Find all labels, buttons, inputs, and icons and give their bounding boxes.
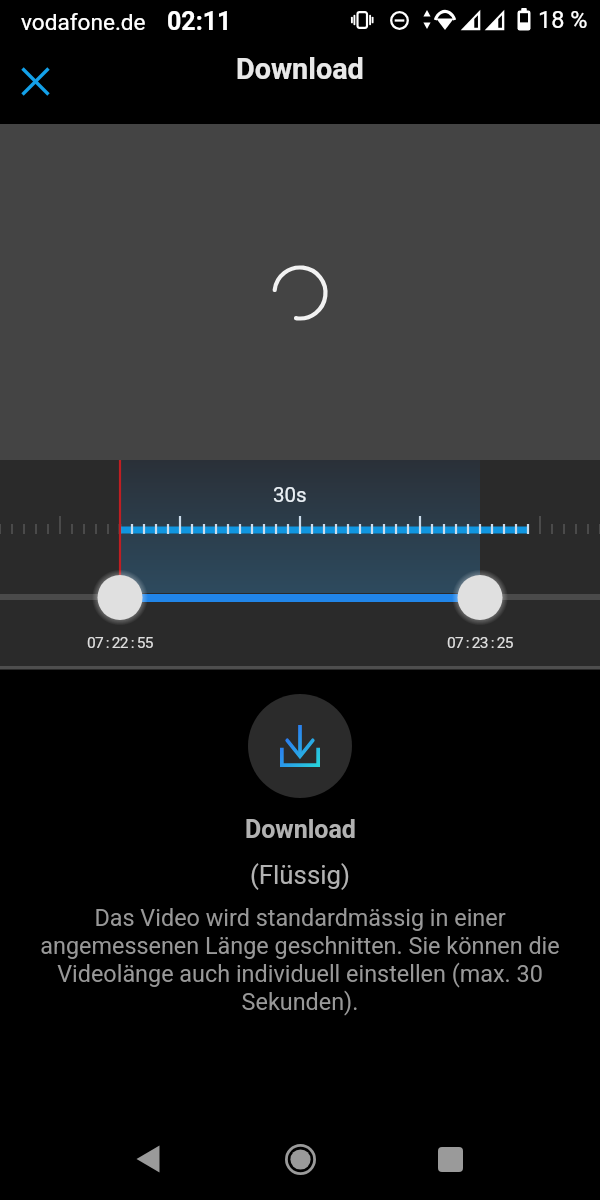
staticText: Download: [245, 815, 356, 844]
button[interactable]: Download: [248, 694, 352, 798]
staticText: 02:11: [167, 7, 232, 36]
staticText: 07 : 23 : 25: [447, 634, 513, 652]
button[interactable]: Close: [5, 51, 65, 111]
staticText: 18 %: [538, 6, 588, 34]
staticText: vodafone.de: [21, 9, 146, 35]
staticText: (Flüssig): [250, 860, 350, 890]
staticText: Das Video wird standardmässig in einer a…: [18, 904, 582, 1016]
staticText: 07 : 22 : 55: [87, 634, 153, 652]
button[interactable]: Back: [115, 1126, 181, 1192]
button[interactable]: Recent apps: [417, 1126, 483, 1192]
button[interactable]: Home: [267, 1126, 333, 1192]
staticText: 30s: [273, 483, 307, 507]
staticText: Download: [236, 52, 364, 86]
